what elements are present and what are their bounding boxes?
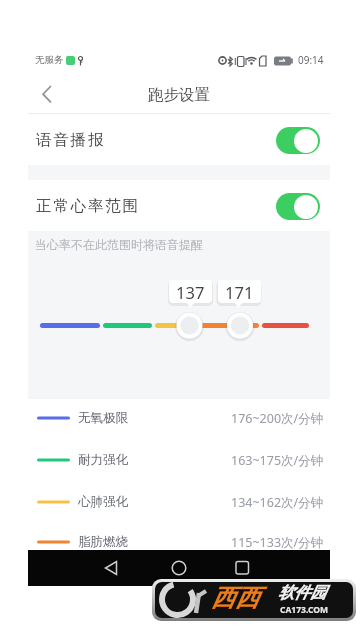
button[interactable] (162, 552, 196, 584)
staticText: 无氧极限 (78, 410, 128, 426)
staticText: 正常心率范围 (36, 196, 140, 216)
staticText: 跑步设置 (148, 85, 210, 105)
button[interactable]: 正常心率范围 (28, 180, 330, 231)
staticText: 耐力强化 (78, 452, 128, 468)
button[interactable]: 脂肪燃烧 (28, 521, 330, 563)
staticText: 163~175次/分钟 (231, 452, 324, 469)
staticText: 语音播报 (36, 130, 106, 150)
button[interactable]: 无氧极限 (28, 397, 330, 439)
staticText: 137 (176, 281, 205, 303)
staticText: 软件园 (278, 583, 326, 603)
button[interactable] (276, 127, 320, 154)
button[interactable]: 心肺强化 (28, 481, 330, 523)
staticText: 心肺强化 (78, 494, 128, 510)
staticText: 171 (225, 281, 254, 303)
button[interactable]: 语音播报 (28, 114, 330, 165)
button[interactable]: 耐力强化 (28, 439, 330, 481)
staticText: 无服务 (35, 54, 64, 66)
button[interactable] (276, 193, 320, 220)
staticText: 176~200次/分钟 (231, 410, 324, 427)
staticText: 当心率不在此范围时将语音提醒 (35, 237, 203, 252)
staticText: CA173.COM (280, 604, 328, 616)
button[interactable] (36, 80, 60, 108)
staticText: 134~162次/分钟 (231, 494, 324, 511)
button[interactable] (97, 552, 131, 584)
button[interactable] (228, 552, 262, 584)
staticText: 西西 (211, 583, 259, 613)
staticText: 09:14 (298, 53, 324, 67)
staticText: 脂肪燃烧 (78, 534, 128, 550)
staticText: 115~133次/分钟 (231, 534, 324, 551)
